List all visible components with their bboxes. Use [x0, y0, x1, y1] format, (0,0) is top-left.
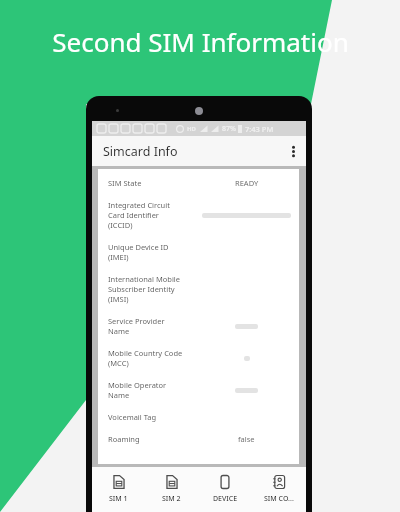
staticText: 7:43 PM [245, 124, 274, 134]
button[interactable]: Integrated Circuit Card Identifier (ICCI… [108, 200, 291, 230]
button[interactable]: SIM 1 [92, 467, 145, 512]
staticText: Roaming [108, 434, 202, 444]
staticText: 87% [222, 124, 236, 134]
button[interactable]: Roaming [108, 434, 291, 444]
staticText: SIM 1 [109, 494, 128, 504]
button[interactable]: SIM CO... [252, 467, 306, 512]
button[interactable]: DEVICE [198, 467, 252, 512]
staticText: Mobile Country Code (MCC) [108, 348, 202, 368]
staticText: HD [187, 125, 196, 133]
staticText: Unique Device ID (IMEI) [108, 242, 202, 262]
button[interactable]: More options [280, 138, 306, 164]
staticText: Integrated Circuit Card Identifier (ICCI… [108, 200, 202, 230]
button[interactable]: SIM 2 [145, 467, 198, 512]
staticText: International Mobile Subscriber Identity… [108, 274, 202, 304]
staticText: Simcard Info [103, 143, 178, 160]
staticText: READY [235, 178, 259, 188]
button[interactable]: International Mobile Subscriber Identity… [108, 274, 291, 304]
button[interactable]: Mobile Country Code (MCC) [108, 348, 291, 368]
staticText: SIM 2 [162, 494, 181, 504]
staticText: false [238, 434, 255, 444]
button[interactable]: SIM State [108, 178, 291, 188]
staticText: Service Provider Name [108, 316, 202, 336]
button[interactable]: Mobile Operator Name [108, 380, 291, 400]
staticText: SIM CO... [264, 494, 294, 504]
staticText: Voicemail Tag [108, 412, 202, 422]
button[interactable]: Service Provider Name [108, 316, 291, 336]
staticText: Mobile Operator Name [108, 380, 202, 400]
staticText: DEVICE [213, 494, 238, 504]
button[interactable]: Voicemail Tag [108, 412, 291, 422]
staticText: SIM State [108, 178, 202, 188]
button[interactable]: Unique Device ID (IMEI) [108, 242, 291, 262]
staticText: Second SIM Information [52, 24, 349, 59]
